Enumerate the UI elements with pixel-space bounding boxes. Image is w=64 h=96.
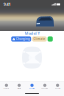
- staticText: Location: [29, 87, 35, 89]
- staticText: Model Y: [24, 30, 39, 36]
- staticText: Climate: [33, 37, 45, 41]
- staticText: Charging: [16, 37, 30, 41]
- button[interactable]: Climate: [13, 82, 26, 91]
- staticText: Controls: [3, 87, 9, 89]
- button[interactable]: Controls: [0, 82, 13, 91]
- staticText: 9:41: [3, 2, 10, 7]
- button[interactable]: Security: [48, 36, 53, 42]
- staticText: Climate: [17, 87, 21, 89]
- button[interactable]: Location: [26, 82, 38, 91]
- button[interactable]: Security: [51, 82, 64, 91]
- button[interactable]: Climate: [32, 36, 47, 42]
- staticText: Charging: [41, 87, 48, 89]
- button[interactable]: Charging: [11, 36, 31, 42]
- button[interactable]: Charging: [38, 82, 51, 91]
- staticText: Security: [55, 87, 61, 89]
